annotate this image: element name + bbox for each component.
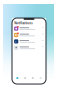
button[interactable]	[12, 38, 46, 45]
button[interactable]: Home	[13, 75, 21, 81]
button[interactable]: Activity	[29, 75, 37, 81]
button[interactable]	[12, 32, 46, 38]
button[interactable]	[12, 25, 46, 32]
button[interactable]	[12, 45, 46, 51]
staticText: Notifications	[14, 21, 32, 25]
button[interactable]: Search	[21, 75, 29, 81]
button[interactable]: Profile	[37, 75, 45, 81]
